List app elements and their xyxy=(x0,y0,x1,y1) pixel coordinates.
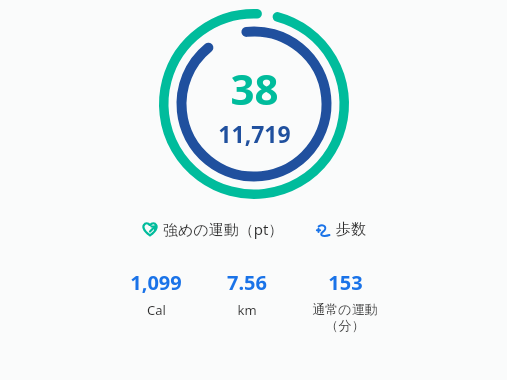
button[interactable]: Steps xyxy=(312,218,368,241)
button[interactable]: 7.56 xyxy=(204,267,290,321)
staticText: 強めの運動（pt） xyxy=(163,219,284,239)
staticText: 153 xyxy=(328,269,363,296)
staticText: 歩数 xyxy=(336,220,366,239)
button[interactable]: 1,099 xyxy=(108,267,204,321)
staticText: km xyxy=(237,301,257,319)
staticText: 通常の運動 （分） xyxy=(312,301,378,334)
staticText: 7.56 xyxy=(227,269,267,296)
staticText: 1,099 xyxy=(130,269,182,296)
staticText: Cal xyxy=(147,301,166,319)
button[interactable]: 38 xyxy=(159,9,349,199)
button[interactable]: 153 xyxy=(290,267,400,336)
other: Steps xyxy=(314,221,332,239)
button[interactable]: Heart points xyxy=(139,217,286,241)
staticText: 11,719 xyxy=(218,118,291,149)
staticText: 38 xyxy=(230,60,279,117)
other: Heart points xyxy=(141,220,159,238)
